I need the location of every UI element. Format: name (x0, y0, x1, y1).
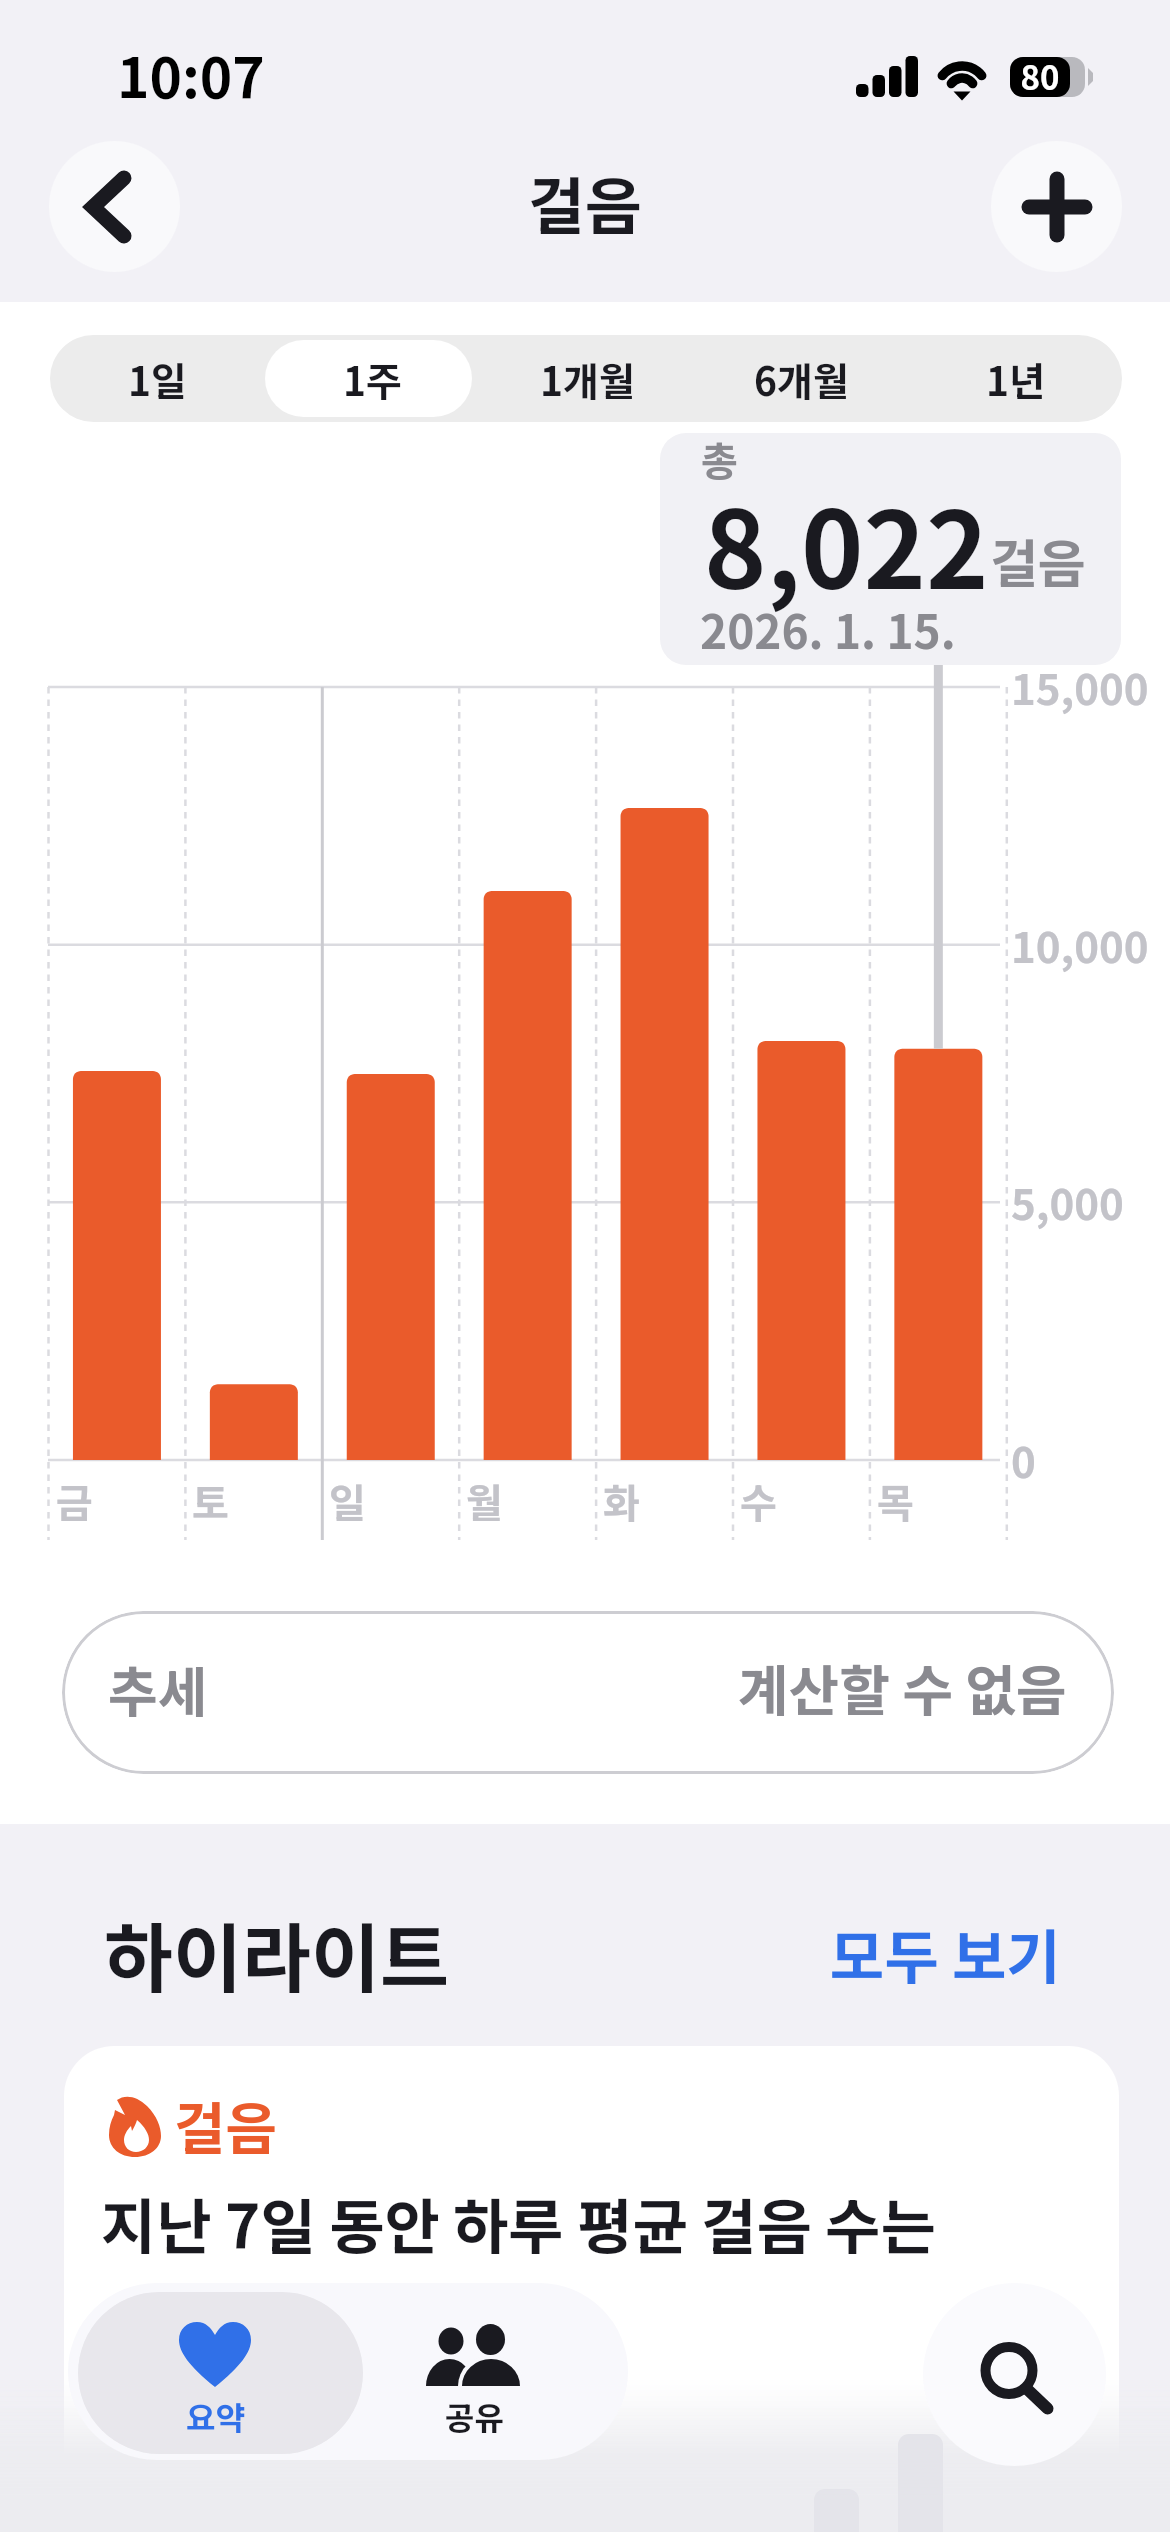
staticText: 하이라이트 (104, 1899, 450, 2008)
button[interactable]: Add (991, 141, 1122, 272)
staticText: 공유 (445, 2393, 504, 2439)
staticText: 5,000 (1011, 1171, 1124, 1232)
staticText: 목 (877, 1472, 914, 1530)
staticText: 지난 7일 동안 하루 평균 걸음 수는 (101, 2179, 936, 2266)
button[interactable]: 걸음 (64, 2046, 1119, 2532)
staticText: 15,000 (1011, 656, 1149, 717)
button[interactable]: 1년 (908, 335, 1122, 422)
staticText: 계산할 수 없음 (738, 1647, 1067, 1727)
button[interactable]: 1일 (50, 335, 265, 422)
button[interactable]: 1주 (265, 335, 480, 422)
staticText: 걸음 (174, 2084, 278, 2165)
staticText: 화 (603, 1472, 640, 1530)
staticText: 0 (1011, 1429, 1036, 1490)
staticText: 1주 (343, 351, 402, 407)
staticText: 6개월 (754, 351, 849, 407)
staticText: 10:07 (117, 34, 265, 114)
staticText: 금 (56, 1472, 93, 1530)
staticText: 2026. 1. 15. (700, 596, 956, 663)
button[interactable]: 모두 보기 (830, 1911, 1061, 1996)
staticText: 요약 (186, 2393, 245, 2439)
staticText: 8,022 (704, 466, 989, 619)
button[interactable]: Back (49, 141, 180, 272)
staticText: 1년 (986, 351, 1045, 407)
button[interactable]: 추세 (62, 1611, 1114, 1774)
staticText: 10,000 (1011, 914, 1149, 975)
staticText: 걸음 (528, 157, 643, 247)
staticText: 1일 (128, 351, 187, 407)
button[interactable]: Search (923, 2283, 1106, 2466)
staticText: 추세 (108, 1649, 208, 1727)
staticText: 일 (329, 1472, 366, 1530)
staticText: 모두 보기 (830, 1911, 1061, 1996)
button[interactable]: 1개월 (480, 335, 694, 422)
staticText: 80 (1012, 52, 1068, 100)
staticText: 월 (466, 1472, 503, 1530)
button[interactable]: 요약 (78, 2292, 363, 2454)
button[interactable]: 6개월 (694, 335, 908, 422)
staticText: 걸음 (990, 523, 1086, 598)
staticText: 토 (192, 1472, 229, 1530)
staticText: 총 (701, 433, 738, 488)
button[interactable]: 공유 (363, 2292, 618, 2454)
staticText: 수 (740, 1472, 777, 1530)
staticText: 1개월 (540, 351, 635, 407)
staticText: 8,022걸음 입니다. (101, 2279, 572, 2366)
